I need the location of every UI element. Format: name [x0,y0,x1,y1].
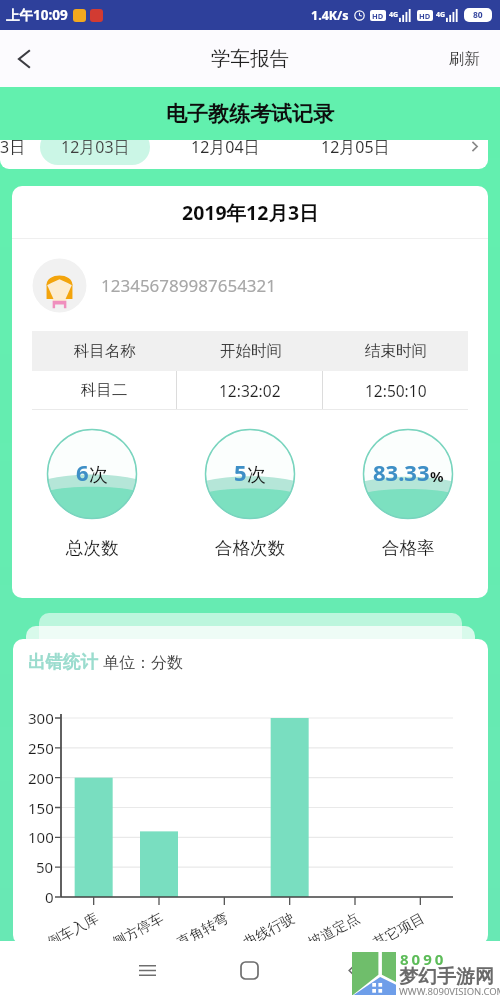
staticText: 12月05日 [321,136,390,158]
staticText: 倒车入库 [44,910,102,945]
staticText: 0 [45,887,54,907]
staticText: HD [419,11,431,21]
staticText: 次 [247,463,266,487]
staticText: 科目二 [81,380,128,400]
staticText: 开始时间 [220,341,282,361]
button[interactable]: 12月04日 [160,124,290,169]
button[interactable]: Home [227,948,271,992]
staticText: 250 [28,738,54,758]
staticText: 次 [89,463,108,487]
button[interactable]: 12月05日 [290,124,420,169]
staticText: 6 [76,457,89,487]
staticText: 50 [36,857,54,877]
staticText: 坡道定点 [305,910,363,945]
staticText: 5 [234,457,247,487]
button[interactable]: Next dates [460,124,488,169]
button[interactable]: Back [330,948,374,992]
staticText: HD [372,11,384,21]
staticText: 其它项目 [370,910,428,945]
staticText: 80 [473,9,483,21]
staticText: 梦幻手游网 [399,965,494,989]
button[interactable]: Back [0,35,48,83]
staticText: 直角转弯 [174,910,232,945]
staticText: 83.33 [373,457,430,487]
staticText: 结束时间 [365,341,427,361]
staticText: 3日 [0,136,26,158]
staticText: 12:32:02 [219,380,281,401]
staticText: 单位：分数 [103,653,183,673]
staticText: 2019年12月3日 [182,199,319,226]
staticText: 4G [436,10,446,20]
staticText: 150 [28,798,54,818]
staticText: WWW.8090VISION.COM [399,985,500,998]
staticText: 123456789987654321 [101,274,277,297]
staticText: 曲线行驶 [240,910,298,945]
staticText: 合格率 [382,537,435,559]
button[interactable]: Recents [125,948,169,992]
staticText: 4G [389,10,399,20]
staticText: 侧方停车 [109,910,167,945]
staticText: 12月03日 [61,136,130,158]
staticText: 总次数 [66,537,119,559]
button[interactable]: 刷新 [449,30,480,87]
staticText: 电子教练考试记录 [166,101,334,127]
staticText: 8090 [400,949,447,969]
staticText: 200 [28,768,54,788]
staticText: 1.4K/s [311,7,349,24]
button[interactable]: 3日 [0,124,30,169]
staticText: 学车报告 [211,46,289,71]
staticText: 上午10:09 [6,6,68,24]
staticText: 出错统计 [28,651,98,673]
staticText: 合格次数 [215,537,285,559]
staticText: 12月04日 [191,136,260,158]
staticText: 刷新 [449,49,480,69]
staticText: 300 [28,708,54,728]
staticText: 12:50:10 [365,380,427,401]
button[interactable]: 12月03日 [30,124,160,169]
staticText: 100 [28,827,54,847]
staticText: 科目名称 [74,341,136,361]
staticText: % [430,466,444,486]
